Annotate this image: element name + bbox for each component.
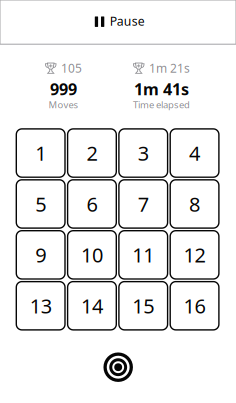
staticText: 105 — [61, 60, 82, 76]
staticText: 1 — [35, 139, 46, 167]
button[interactable]: 11 — [119, 231, 168, 279]
staticText: 1m 41s — [134, 78, 189, 100]
staticText: 8 — [189, 190, 200, 217]
staticText: 6 — [86, 190, 97, 217]
button[interactable]: 15 — [119, 282, 168, 330]
staticText: 9 — [35, 241, 46, 268]
button[interactable]: 1 — [16, 129, 65, 177]
staticText: 5 — [35, 190, 46, 217]
button[interactable]: 8 — [170, 180, 219, 228]
button[interactable]: New game — [103, 352, 133, 382]
button[interactable]: 16 — [170, 282, 219, 330]
staticText: 13 — [30, 292, 52, 319]
staticText: 7 — [138, 190, 149, 217]
button[interactable]: 5 — [16, 180, 65, 228]
staticText: 12 — [184, 241, 206, 268]
button[interactable]: 4 — [170, 129, 219, 177]
button[interactable]: 10 — [68, 231, 116, 279]
staticText: 3 — [138, 139, 149, 167]
staticText: 4 — [189, 139, 200, 167]
staticText: Pause — [110, 13, 145, 29]
staticText: Time elapsed — [133, 98, 190, 111]
button[interactable]: 13 — [16, 282, 65, 330]
staticText: 999 — [50, 78, 77, 100]
button[interactable]: 7 — [119, 180, 168, 228]
button[interactable]: Pause — [0, 0, 236, 44]
button[interactable]: 2 — [68, 129, 116, 177]
button[interactable]: 12 — [170, 231, 219, 279]
button[interactable]: 3 — [119, 129, 168, 177]
staticText: 16 — [184, 292, 206, 319]
staticText: 11 — [132, 241, 154, 268]
staticText: 10 — [81, 241, 103, 268]
staticText: Moves — [48, 98, 78, 111]
button[interactable]: 6 — [68, 180, 116, 228]
staticText: 14 — [81, 292, 103, 319]
staticText: 15 — [132, 292, 154, 319]
staticText: 1m 21s — [149, 60, 190, 76]
button[interactable]: 14 — [68, 282, 116, 330]
button[interactable]: 9 — [16, 231, 65, 279]
staticText: 2 — [86, 139, 97, 167]
